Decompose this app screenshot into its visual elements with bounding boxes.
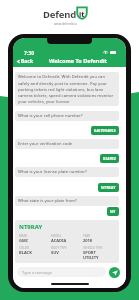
button[interactable]: NT9RAY bbox=[15, 220, 119, 263]
button[interactable]: Back bbox=[15, 57, 35, 66]
staticText: Back bbox=[21, 58, 34, 65]
staticText: 034992 bbox=[103, 156, 116, 161]
button[interactable]: 6467094053 bbox=[91, 126, 119, 135]
staticText: NY bbox=[110, 209, 116, 214]
staticText: 2018 bbox=[83, 238, 93, 243]
staticText: Type a message bbox=[22, 270, 53, 275]
button[interactable]: 034992 bbox=[100, 154, 119, 163]
staticText: What state is your plate from? bbox=[18, 198, 77, 204]
staticText: NT9RAY bbox=[19, 223, 43, 231]
staticText: MAKE bbox=[19, 234, 28, 238]
staticText: 6467094053 bbox=[94, 128, 116, 133]
button[interactable]: What state is your plate from? bbox=[15, 196, 119, 206]
staticText: NT9RAY bbox=[101, 185, 116, 190]
staticText: GMC bbox=[19, 238, 29, 243]
button[interactable]: What is your license plate number? bbox=[15, 167, 119, 177]
staticText: ACADIA bbox=[51, 238, 67, 243]
staticText: www.defendit.io bbox=[54, 22, 77, 26]
button[interactable]: What is your cell phone number? bbox=[15, 111, 119, 121]
staticText: Defend bbox=[43, 8, 76, 21]
button[interactable]: Welcome to Defendit. With Defendit you c… bbox=[15, 72, 119, 106]
staticText: What is your license plate number? bbox=[18, 169, 87, 175]
staticText: Welcome to Defendit. With Defendit you c… bbox=[18, 74, 116, 104]
button[interactable]: NY bbox=[107, 207, 119, 216]
staticText: BODY TYPE bbox=[51, 246, 67, 250]
staticText: SUV bbox=[51, 250, 59, 255]
staticText: BLACK bbox=[19, 250, 32, 255]
staticText: Welcome To Defendit bbox=[49, 57, 107, 64]
staticText: 7:30 bbox=[24, 50, 34, 57]
staticText: it bbox=[79, 9, 85, 19]
staticText: SPORT UTILITY bbox=[83, 250, 99, 260]
staticText: VEHICLE TYPE bbox=[83, 246, 103, 250]
staticText: YEAR bbox=[83, 234, 91, 238]
staticText: Enter your verification code bbox=[18, 141, 73, 147]
button[interactable]: Send bbox=[109, 267, 120, 278]
staticText: MODEL bbox=[51, 234, 62, 238]
button[interactable]: Enter your verification code bbox=[15, 139, 119, 149]
staticText: What is your cell phone number? bbox=[18, 113, 83, 119]
button[interactable]: NT9RAY bbox=[98, 183, 119, 192]
staticText: COLOR bbox=[19, 246, 29, 250]
button[interactable]: Type a message bbox=[17, 267, 106, 277]
